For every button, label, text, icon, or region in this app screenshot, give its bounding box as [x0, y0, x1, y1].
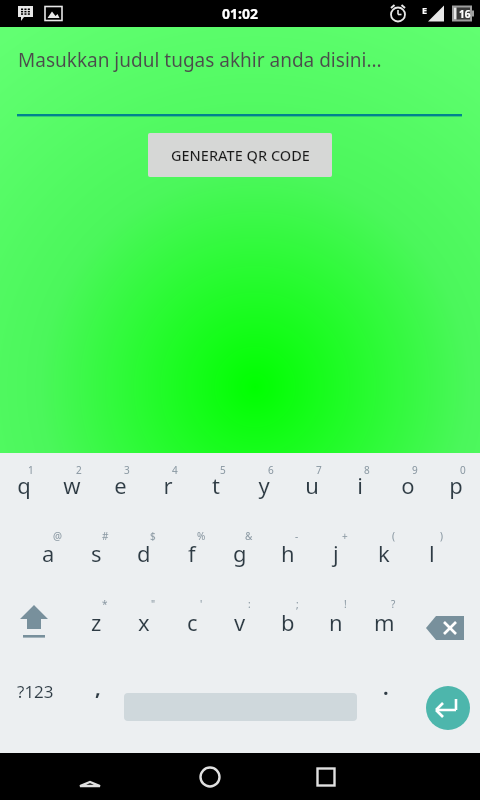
staticText: b	[281, 607, 295, 637]
button[interactable]: 6	[240, 455, 288, 503]
button[interactable]: #	[72, 523, 120, 571]
button[interactable]: -	[264, 523, 312, 571]
button[interactable]: ,	[76, 668, 120, 714]
button[interactable]: $	[120, 523, 168, 571]
staticText: o	[401, 470, 415, 500]
staticText: ?	[391, 597, 396, 611]
staticText: 7	[316, 463, 322, 477]
staticText: Masukkan judul tugas akhir anda disini..…	[18, 47, 382, 73]
staticText: t	[212, 470, 220, 500]
staticText: p	[449, 470, 463, 500]
button[interactable]: .	[366, 668, 406, 714]
button[interactable]: 1	[0, 455, 48, 503]
staticText: j	[333, 538, 339, 568]
staticText: k	[378, 538, 390, 568]
staticText: E	[422, 4, 428, 16]
button[interactable]: ?	[360, 593, 408, 641]
button[interactable]: Shift	[4, 593, 64, 643]
staticText: n	[329, 607, 343, 637]
staticText: m	[374, 607, 395, 637]
button[interactable]: 5	[192, 455, 240, 503]
button[interactable]: Enter	[426, 686, 470, 730]
staticText: v	[234, 607, 246, 637]
staticText: &	[245, 529, 253, 543]
staticText: $	[150, 529, 156, 543]
staticText: 2	[76, 463, 82, 477]
staticText: z	[91, 607, 102, 637]
staticText: f	[188, 538, 196, 568]
staticText: s	[91, 538, 102, 568]
staticText: g	[233, 538, 247, 568]
button[interactable]: Home	[180, 753, 240, 800]
staticText: 4	[172, 463, 178, 477]
staticText: #	[102, 529, 109, 543]
button[interactable]: )	[408, 523, 456, 571]
staticText: 3	[124, 463, 130, 477]
button[interactable]: &	[216, 523, 264, 571]
button[interactable]: 4	[144, 455, 192, 503]
button[interactable]: +	[312, 523, 360, 571]
button[interactable]: 0	[432, 455, 480, 503]
staticText: @	[53, 529, 62, 543]
staticText: d	[137, 538, 151, 568]
staticText: w	[63, 470, 81, 500]
staticText: ?123	[17, 680, 54, 703]
button[interactable]: 9	[384, 455, 432, 503]
staticText: x	[138, 607, 150, 637]
staticText: :	[248, 597, 251, 611]
staticText: .	[383, 674, 389, 701]
button[interactable]: !	[312, 593, 360, 641]
staticText: GENERATE QR CODE	[171, 145, 310, 165]
staticText: )	[440, 529, 443, 543]
button[interactable]: ?123	[4, 668, 66, 714]
button[interactable]: Back	[60, 753, 120, 800]
staticText: "	[151, 597, 156, 611]
staticText: 5	[220, 463, 226, 477]
button[interactable]: %	[168, 523, 216, 571]
staticText: l	[429, 538, 435, 568]
staticText: %	[197, 529, 206, 543]
button[interactable]: GENERATE QR CODE	[148, 133, 332, 177]
button[interactable]: @	[24, 523, 72, 571]
staticText: 9	[412, 463, 418, 477]
button[interactable]: "	[120, 593, 168, 641]
staticText: -	[295, 529, 299, 543]
staticText: y	[258, 470, 270, 500]
staticText: c	[187, 607, 198, 637]
button[interactable]: (	[360, 523, 408, 571]
button[interactable]: 3	[96, 455, 144, 503]
staticText: a	[42, 538, 55, 568]
staticText: !	[344, 597, 347, 611]
staticText: u	[305, 470, 319, 500]
staticText: r	[163, 470, 173, 500]
button[interactable]: '	[168, 593, 216, 641]
staticText: (	[392, 529, 395, 543]
button[interactable]: 2	[48, 455, 96, 503]
staticText: h	[281, 538, 295, 568]
staticText: q	[17, 470, 31, 500]
staticText: 6	[268, 463, 274, 477]
staticText: 1	[28, 463, 34, 477]
staticText: 16	[459, 7, 471, 21]
button[interactable]: :	[216, 593, 264, 641]
button[interactable]: ;	[264, 593, 312, 641]
staticText: +	[342, 529, 348, 543]
staticText: 01:02	[222, 4, 258, 23]
button[interactable]: Recents	[296, 753, 356, 800]
button[interactable]: 8	[336, 455, 384, 503]
staticText: 8	[364, 463, 370, 477]
staticText: '	[200, 597, 203, 611]
staticText: e	[114, 470, 127, 500]
staticText: ;	[296, 597, 299, 611]
staticText: *	[102, 597, 108, 611]
staticText: 0	[460, 463, 466, 477]
staticText: i	[357, 470, 363, 500]
button[interactable]: *	[72, 593, 120, 641]
button[interactable]: 7	[288, 455, 336, 503]
button[interactable]: Backspace	[420, 608, 476, 648]
staticText: ,	[95, 674, 101, 701]
